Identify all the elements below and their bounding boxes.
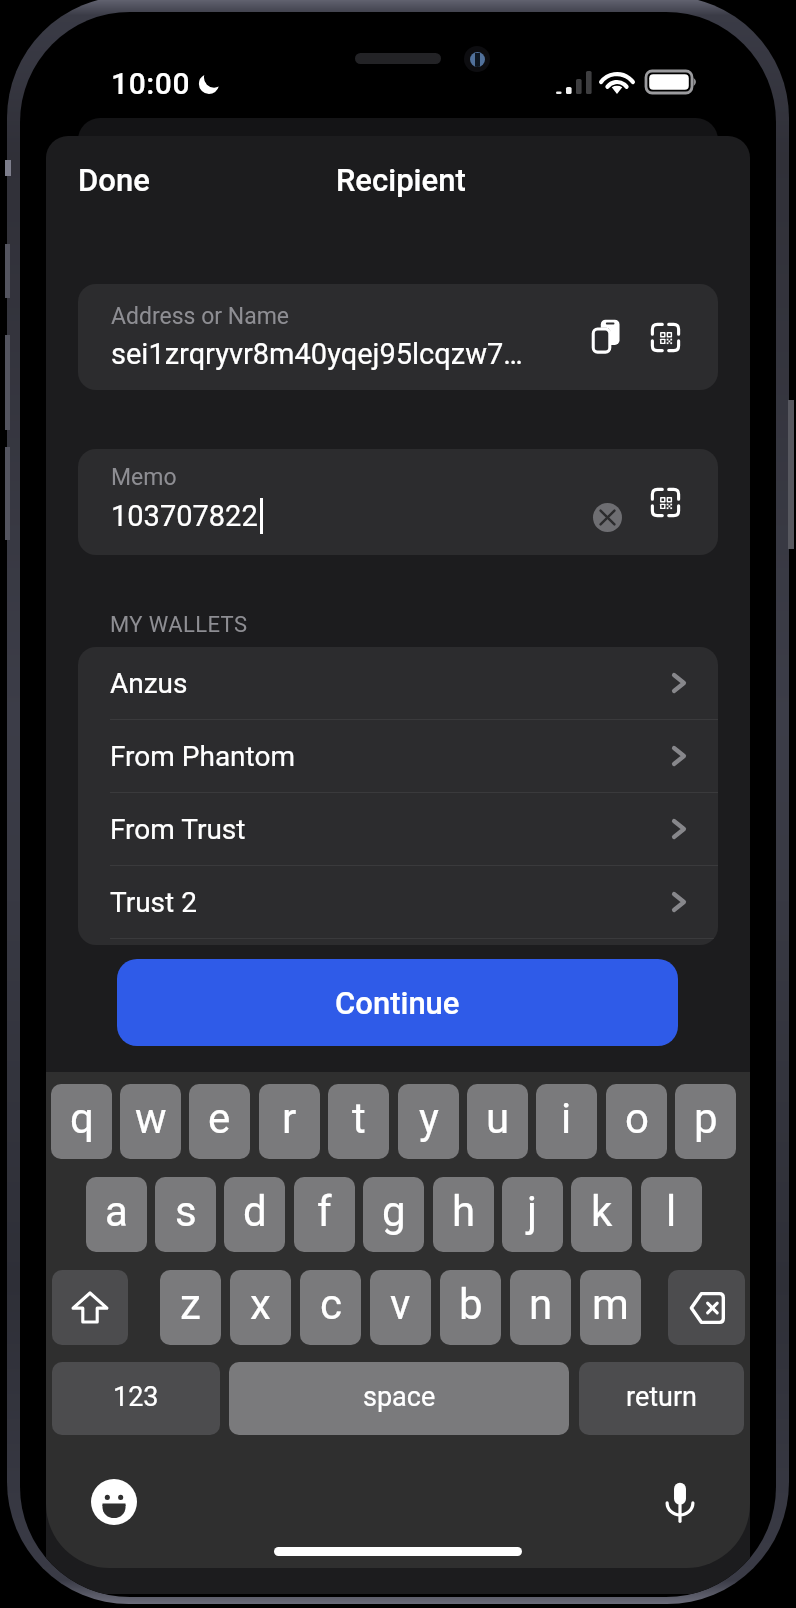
button[interactable]: return [579,1362,744,1435]
staticText: Address or Name [111,303,290,330]
staticText: o [625,1094,649,1143]
staticText: return [626,1381,697,1413]
button[interactable]: j [502,1177,563,1252]
button[interactable]: d [224,1177,285,1252]
button[interactable]: z [160,1270,221,1345]
button[interactable]: Backspace [668,1270,745,1345]
staticText: Anzus [110,667,188,700]
button[interactable]: Anzus [78,647,718,720]
button[interactable]: y [398,1084,459,1159]
button[interactable]: q [51,1084,112,1159]
button[interactable]: Scan QR code [638,310,692,364]
button[interactable]: Memo [78,449,718,555]
staticText: Recipient [336,162,466,198]
button[interactable]: Dictation [652,1474,708,1530]
button[interactable]: h [433,1177,494,1252]
staticText: r [282,1094,297,1143]
button[interactable]: v [370,1270,431,1345]
staticText: e [208,1094,231,1143]
button[interactable]: e [189,1084,250,1159]
staticText: From Phantom [110,740,295,773]
button[interactable]: o [606,1084,667,1159]
staticText: n [529,1280,553,1329]
staticText: u [486,1094,510,1143]
staticText: i [561,1094,572,1143]
staticText: a [105,1187,128,1236]
button[interactable]: Continue [117,959,678,1046]
button[interactable]: Scan QR code [638,475,692,529]
button[interactable]: x [230,1270,291,1345]
staticText: Trust 2 [110,886,197,919]
button[interactable]: i [536,1084,597,1159]
staticText: t [352,1094,366,1143]
staticText: s [175,1187,197,1236]
staticText: z [180,1280,201,1329]
button[interactable]: b [440,1270,501,1345]
button[interactable]: Emoji keyboard [86,1474,142,1530]
button[interactable]: Paste address [579,310,633,364]
staticText: b [459,1280,483,1329]
staticText: c [320,1280,342,1329]
staticText: d [243,1187,267,1236]
button[interactable]: Clear memo [580,490,634,544]
staticText: v [390,1280,411,1329]
button[interactable]: From Phantom [78,720,718,793]
staticText: Done [78,162,150,198]
button[interactable]: r [259,1084,320,1159]
button[interactable]: f [294,1177,355,1252]
button[interactable]: 123 [52,1362,220,1435]
staticText: space [363,1381,436,1413]
button[interactable]: u [467,1084,528,1159]
staticText: Memo [111,464,177,491]
button[interactable]: Done [58,152,170,208]
button[interactable]: k [571,1177,632,1252]
button[interactable]: Shift [52,1270,128,1345]
staticText: l [666,1187,677,1236]
staticText: MY WALLETS [110,612,248,638]
staticText: f [317,1187,332,1236]
staticText: q [70,1094,94,1143]
button[interactable]: From Trust [78,793,718,866]
staticText: 123 [113,1381,159,1413]
staticText: sei1zrqryvr8m40yqej95lcqzw7… [111,337,523,371]
button[interactable]: g [363,1177,424,1252]
button[interactable]: space [229,1362,569,1435]
button[interactable]: l [641,1177,702,1252]
button[interactable]: p [675,1084,736,1159]
button[interactable]: Address or Name [78,284,718,390]
staticText: p [694,1094,718,1143]
staticText: h [452,1187,476,1236]
staticText: k [591,1187,613,1236]
button[interactable]: s [155,1177,216,1252]
button[interactable]: Trust 2 [78,866,718,939]
staticText: y [419,1094,439,1143]
staticText: 10:00 [111,66,191,101]
staticText: 103707822 [111,499,258,533]
button[interactable]: a [86,1177,147,1252]
staticText: g [382,1187,406,1236]
staticText: w [135,1094,167,1143]
button[interactable]: t [328,1084,389,1159]
staticText: x [250,1280,271,1329]
button[interactable]: m [580,1270,641,1345]
staticText: m [592,1280,629,1329]
staticText: j [527,1187,538,1236]
button[interactable]: c [300,1270,361,1345]
button[interactable]: w [120,1084,181,1159]
staticText: From Trust [110,813,246,846]
button[interactable]: n [510,1270,571,1345]
staticText: Continue [335,985,460,1021]
